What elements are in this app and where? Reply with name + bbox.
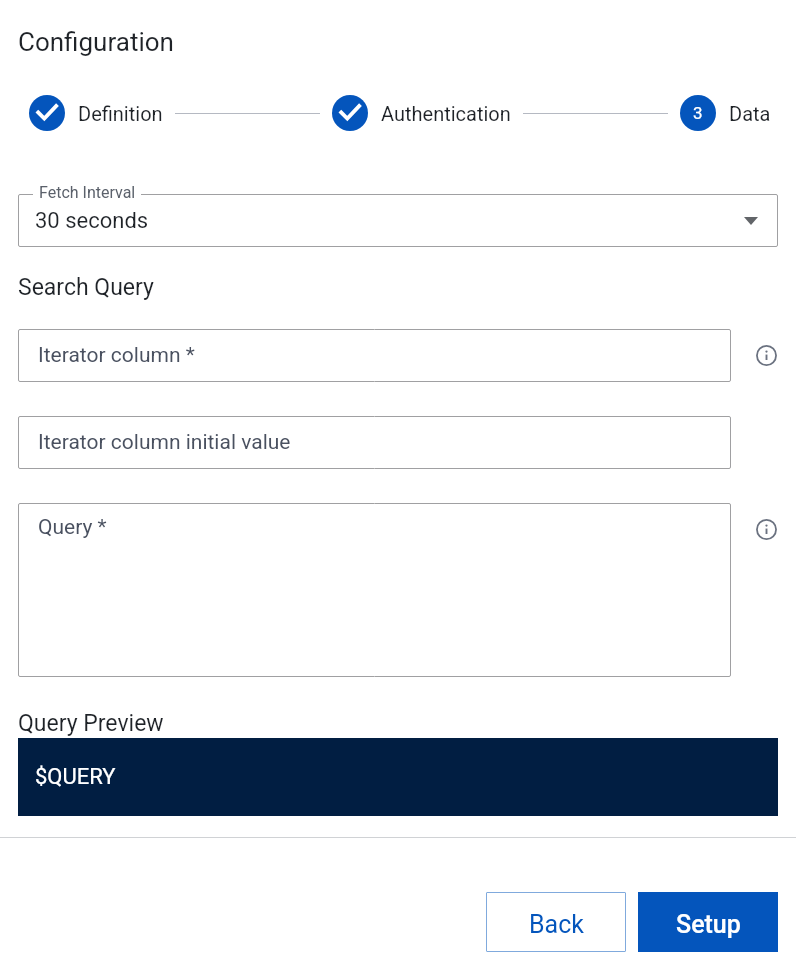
- button[interactable]: Query help: [756, 519, 777, 540]
- staticText: Configuration: [18, 27, 174, 57]
- button[interactable]: Iterator column initial value: [18, 416, 731, 469]
- staticText: Query *: [38, 515, 107, 540]
- button[interactable]: Query *: [18, 503, 731, 677]
- staticText: Iterator column *: [38, 343, 195, 368]
- staticText: Authentication: [381, 102, 511, 125]
- button[interactable]: Iterator column help: [756, 345, 777, 366]
- staticText: 30 seconds: [35, 208, 149, 234]
- staticText: Data: [729, 102, 771, 125]
- staticText: Definition: [78, 102, 163, 125]
- button[interactable]: 3: [680, 95, 771, 131]
- staticText: 3: [693, 103, 703, 123]
- staticText: Back: [529, 910, 584, 939]
- staticText: Fetch Interval: [39, 183, 136, 202]
- staticText: $QUERY: [35, 764, 116, 790]
- staticText: Iterator column initial value: [38, 430, 291, 455]
- button[interactable]: Authentication: [332, 95, 511, 131]
- staticText: Search Query: [18, 274, 154, 301]
- button[interactable]: Definition: [29, 95, 163, 131]
- button[interactable]: 30 seconds: [18, 194, 778, 247]
- staticText: Query Preview: [18, 710, 164, 737]
- button[interactable]: Setup: [638, 892, 778, 952]
- button[interactable]: Iterator column *: [18, 329, 731, 382]
- staticText: Setup: [676, 910, 741, 939]
- button[interactable]: Back: [486, 892, 626, 952]
